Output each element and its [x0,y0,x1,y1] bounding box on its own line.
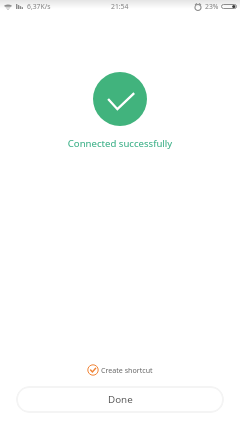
button[interactable]: Create shortcut [81,361,159,379]
other: Battery 23 percent [221,4,237,9]
button[interactable]: Done [16,386,224,413]
staticText: 6,37K/s [27,2,51,11]
staticText: Done [108,393,133,406]
other: Alarm set [194,3,202,11]
staticText: Connected successfully [0,137,240,150]
staticText: 21:54 [111,2,129,11]
staticText: Create shortcut [101,365,153,375]
staticText: 23% [205,2,219,11]
other: Wi-Fi [4,4,12,10]
other: Network speed [16,4,23,9]
